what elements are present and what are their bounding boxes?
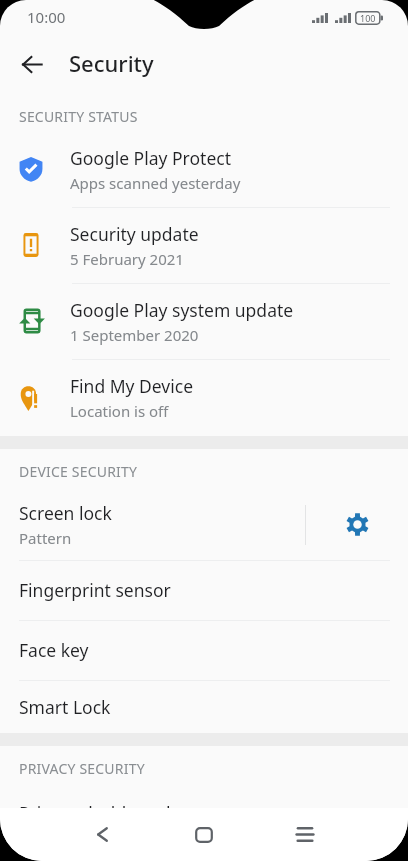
staticText: 100 — [360, 12, 376, 24]
staticText: Security update — [70, 222, 199, 246]
staticText: Google Play Protect — [70, 146, 231, 170]
staticText: PRIVACY SECURITY — [19, 759, 145, 774]
staticText: 5 February 2021 — [70, 249, 184, 269]
staticText: DEVICE SECURITY — [19, 462, 138, 477]
button[interactable]: Google Play Protect — [0, 131, 408, 207]
button[interactable]: Face key — [0, 620, 408, 680]
button[interactable]: Smart Lock — [0, 680, 408, 733]
button[interactable]: Fingerprint sensor — [0, 560, 408, 620]
button[interactable]: Home — [172, 809, 236, 860]
button[interactable]: Google Play system update — [0, 283, 408, 359]
staticText: Pattern — [19, 528, 72, 548]
button[interactable]: Back — [9, 42, 54, 87]
staticText: 1 September 2020 — [70, 325, 199, 345]
button[interactable]: Recent apps — [273, 809, 337, 860]
button[interactable]: Screen lock — [0, 489, 305, 560]
staticText: Privacy dashboard — [19, 801, 171, 808]
staticText: Screen lock — [19, 501, 112, 525]
button[interactable]: Privacy dashboard — [0, 801, 408, 808]
staticText: 10:00 — [27, 7, 66, 27]
button[interactable]: Security update — [0, 207, 408, 283]
button[interactable]: Find My Device — [0, 359, 408, 436]
staticText: Find My Device — [70, 374, 194, 398]
staticText: Location is off — [70, 401, 169, 421]
staticText: SECURITY STATUS — [19, 107, 138, 122]
button[interactable]: Back — [70, 809, 134, 860]
staticText: Face key — [19, 638, 89, 662]
staticText: Apps scanned yesterday — [70, 173, 241, 193]
button[interactable]: Screen lock settings — [306, 489, 408, 560]
staticText: Security — [69, 48, 154, 78]
staticText: Google Play system update — [70, 298, 294, 322]
staticText: Fingerprint sensor — [19, 578, 171, 602]
staticText: Smart Lock — [19, 695, 111, 719]
